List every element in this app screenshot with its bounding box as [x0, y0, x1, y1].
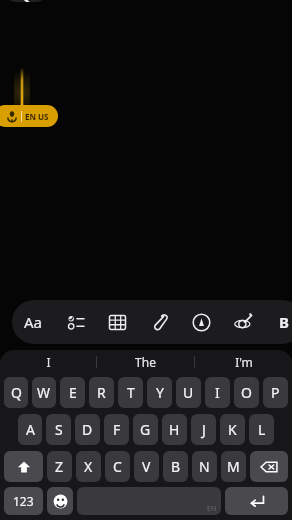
- button[interactable]: J: [191, 414, 216, 445]
- button[interactable]: B: [163, 451, 188, 482]
- button[interactable]: Z: [47, 451, 72, 482]
- button[interactable]: O: [234, 377, 259, 408]
- button[interactable]: S: [46, 414, 71, 445]
- button[interactable]: Enter: [225, 487, 288, 515]
- button[interactable]: L: [249, 414, 274, 445]
- staticText: R: [97, 383, 106, 402]
- button[interactable]: F: [104, 414, 129, 445]
- button[interactable]: Attach: [138, 300, 180, 344]
- button[interactable]: X: [76, 451, 101, 482]
- staticText: EN US: [25, 111, 49, 122]
- button[interactable]: C: [105, 451, 130, 482]
- staticText: O: [241, 383, 252, 402]
- button[interactable]: W: [32, 377, 56, 408]
- button[interactable]: E: [60, 377, 85, 408]
- staticText: B: [171, 457, 181, 476]
- staticText: I: [46, 354, 51, 370]
- button[interactable]: Text formatting: [12, 300, 54, 344]
- button[interactable]: Bold: [264, 300, 292, 344]
- staticText: F: [113, 420, 121, 439]
- button[interactable]: Space: [77, 487, 221, 515]
- button[interactable]: AI assist: [222, 300, 264, 344]
- staticText: Aa: [24, 312, 43, 332]
- button[interactable]: Emoji: [47, 487, 73, 515]
- staticText: W: [37, 383, 51, 402]
- button[interactable]: Back: [4, 0, 48, 2]
- staticText: S: [55, 420, 63, 439]
- staticText: U: [183, 383, 194, 402]
- button[interactable]: Table: [96, 300, 138, 344]
- staticText: I: [215, 383, 220, 402]
- button[interactable]: G: [133, 414, 158, 445]
- button[interactable]: 123: [4, 487, 43, 515]
- staticText: B: [279, 312, 289, 332]
- button[interactable]: N: [192, 451, 217, 482]
- button[interactable]: EN US: [0, 105, 58, 127]
- button[interactable]: The: [97, 350, 194, 374]
- button[interactable]: V: [134, 451, 159, 482]
- staticText: C: [113, 457, 122, 476]
- button[interactable]: M: [221, 451, 246, 482]
- staticText: E: [69, 383, 77, 402]
- button[interactable]: T: [118, 377, 143, 408]
- button[interactable]: I'm: [195, 350, 292, 374]
- staticText: The: [135, 354, 156, 370]
- button[interactable]: Checklist: [54, 300, 96, 344]
- button[interactable]: Y: [147, 377, 172, 408]
- staticText: K: [228, 420, 237, 439]
- staticText: L: [258, 420, 266, 439]
- staticText: J: [202, 420, 206, 439]
- button[interactable]: I: [205, 377, 230, 408]
- button[interactable]: Backspace: [250, 451, 288, 482]
- button[interactable]: Shift: [4, 451, 43, 482]
- button[interactable]: Q: [4, 377, 28, 408]
- staticText: N: [199, 457, 210, 476]
- button[interactable]: R: [89, 377, 114, 408]
- staticText: G: [140, 420, 151, 439]
- staticText: I'm: [235, 354, 253, 370]
- staticText: T: [127, 383, 135, 402]
- staticText: 123: [13, 493, 34, 509]
- staticText: EN: [207, 504, 217, 514]
- button[interactable]: U: [176, 377, 201, 408]
- staticText: P: [271, 383, 280, 402]
- button[interactable]: A: [18, 414, 42, 445]
- button[interactable]: P: [263, 377, 288, 408]
- button[interactable]: D: [75, 414, 100, 445]
- staticText: H: [169, 420, 180, 439]
- staticText: D: [82, 420, 93, 439]
- staticText: V: [142, 457, 151, 476]
- button[interactable]: Draw: [180, 300, 222, 344]
- button[interactable]: I: [0, 350, 96, 374]
- staticText: Q: [11, 383, 22, 402]
- button[interactable]: K: [220, 414, 245, 445]
- staticText: A: [26, 420, 35, 439]
- staticText: X: [84, 457, 93, 476]
- staticText: M: [227, 457, 240, 476]
- staticText: Z: [55, 457, 64, 476]
- button[interactable]: H: [162, 414, 187, 445]
- staticText: Y: [156, 383, 164, 402]
